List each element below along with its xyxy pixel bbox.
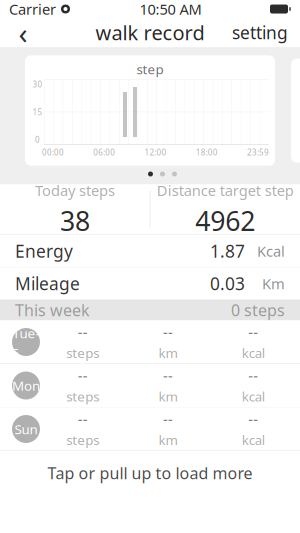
staticText: kcal [242,431,265,449]
staticText: walk record [95,19,204,46]
staticText: This week [15,299,90,321]
staticText: steps [66,431,99,449]
button[interactable]: Mileage [0,267,300,299]
staticText: 38 [60,203,90,238]
staticText: 00:00 [42,147,64,158]
staticText: Sun [14,420,37,438]
staticText: Energy [15,239,73,262]
staticText: -- [248,366,258,385]
staticText: -- [163,322,173,342]
staticText: 30 [32,79,42,90]
staticText: 4962 [195,203,255,238]
staticText: Today steps [35,181,115,200]
staticText: kcal [242,344,265,362]
staticText: Carrier [9,0,56,19]
staticText: -- [248,409,258,429]
staticText: -- [78,366,88,385]
staticText: Tues [12,324,39,360]
staticText: -- [78,409,88,429]
staticText: 18:00 [196,147,218,158]
staticText: 0 steps [231,299,285,321]
staticText: 15 [32,107,42,117]
staticText: Distance target step [157,181,294,200]
staticText: Mon [12,377,40,394]
staticText: 06:00 [93,147,115,158]
staticText: kcal [242,387,265,405]
staticText: 23:59 [247,147,269,158]
staticText: 10:50 AM [139,0,201,19]
staticText: 12:00 [144,147,166,158]
button[interactable]: Tues [0,320,300,363]
staticText: Km [262,274,285,293]
button[interactable]: Sun [0,407,300,450]
staticText: 0 [35,134,40,145]
button[interactable]: Mon [0,364,300,407]
staticText: 0.03 [210,272,245,295]
staticText: km [158,431,177,449]
staticText: Tap or pull up to load more [47,462,252,484]
staticText: ‹ [18,13,27,52]
staticText: steps [66,387,99,405]
staticText: step [136,60,163,78]
staticText: -- [163,409,173,429]
staticText: km [158,344,177,362]
staticText: setting [232,21,288,44]
staticText: steps [66,344,99,362]
button[interactable]: Back [6,17,40,47]
staticText: -- [163,366,173,385]
staticText: Mileage [15,272,80,295]
staticText: km [158,387,177,405]
staticText: -- [248,322,258,342]
staticText: 1.87 [210,239,245,262]
staticText: -- [78,322,88,342]
button[interactable]: Energy [0,235,300,267]
button[interactable]: Tap or pull up to load more [0,451,300,495]
button[interactable]: setting [226,17,294,47]
staticText: Kcal [257,241,285,261]
